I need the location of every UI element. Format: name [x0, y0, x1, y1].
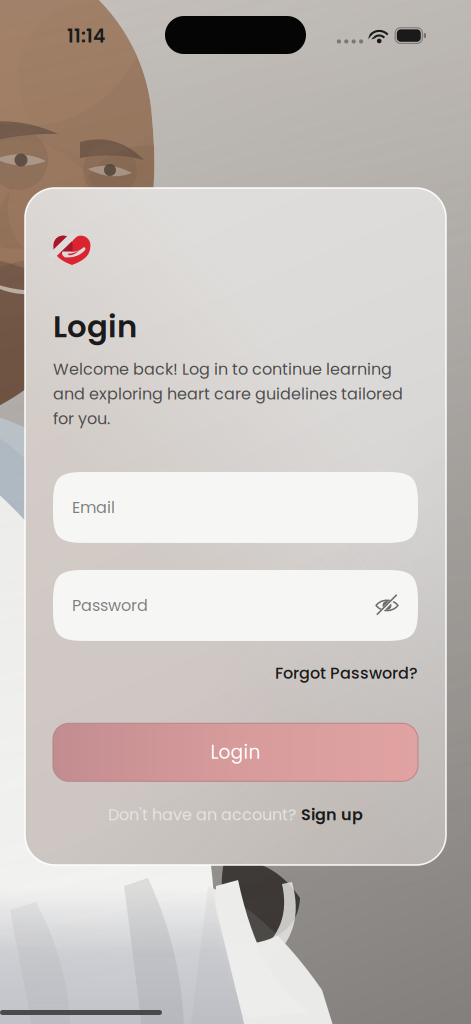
button[interactable]: Login	[53, 723, 418, 781]
staticText: Email	[72, 496, 115, 519]
staticText: Don't have an account?	[108, 803, 296, 826]
staticText: 11:14	[67, 23, 105, 49]
staticText: Login	[53, 305, 137, 348]
button[interactable]: Forgot Password?	[275, 662, 418, 684]
button[interactable]: Sign up	[301, 803, 363, 826]
button[interactable]: Show password	[371, 589, 403, 621]
staticText: Forgot Password?	[275, 662, 418, 684]
staticText: Password	[72, 594, 148, 617]
staticText: Welcome back! Log in to continue learnin…	[53, 358, 403, 430]
staticText: Login	[210, 739, 260, 765]
button[interactable]: Email	[53, 472, 418, 543]
staticText: Sign up	[301, 803, 363, 826]
